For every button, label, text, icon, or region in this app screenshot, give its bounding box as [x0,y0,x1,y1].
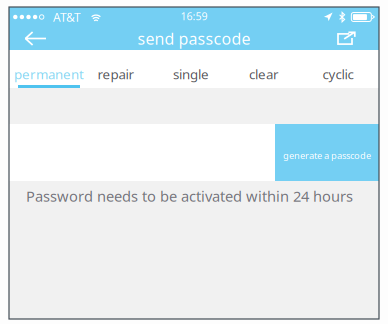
staticText: generate a passcode [283,149,371,162]
staticText: 16:59 [180,9,207,23]
staticText: single [173,65,209,83]
button[interactable]: single [154,50,228,88]
button[interactable]: Share [327,27,379,50]
button[interactable]: cyclic [301,50,375,88]
staticText: AT&T [53,9,81,25]
staticText: cyclic [322,65,353,83]
button[interactable]: repair [79,50,153,88]
staticText: send passcode [137,28,250,49]
staticText: repair [97,65,134,83]
button[interactable]: permanent [9,50,89,88]
staticText: clear [249,65,279,83]
button[interactable]: clear [227,50,301,88]
button[interactable]: Back [9,27,61,50]
staticText: permanent [14,65,84,83]
button[interactable]: generate a passcode [275,124,379,181]
staticText: Password needs to be activated within 24… [26,186,353,206]
